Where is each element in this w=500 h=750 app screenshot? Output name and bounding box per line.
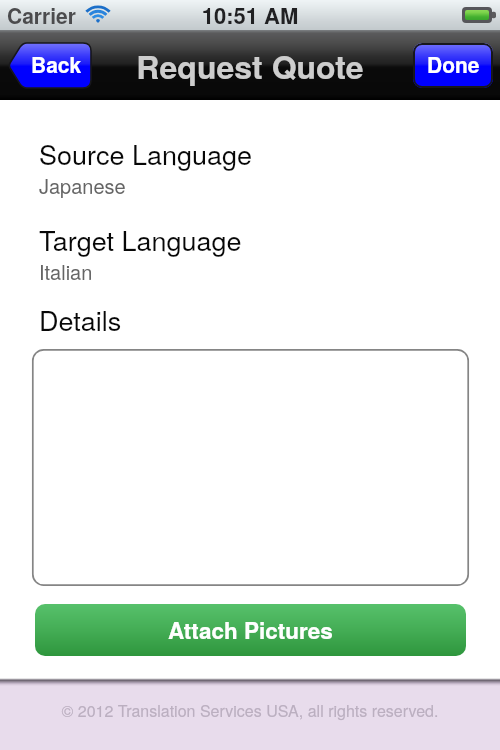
staticText: © 2012 Translation Services USA, all rig… — [0, 699, 500, 722]
staticText: Back — [31, 49, 82, 79]
staticText: Japanese — [39, 171, 126, 200]
staticText: Details — [39, 300, 122, 339]
staticText: Request Quote — [0, 43, 500, 89]
staticText: Attach Pictures — [168, 614, 333, 646]
other: Wi-Fi signal — [85, 6, 111, 23]
other: Battery full — [462, 7, 496, 23]
button[interactable]: Details input — [32, 349, 469, 586]
staticText: Done — [427, 49, 480, 79]
staticText: Target Language — [39, 220, 242, 259]
button[interactable]: Done — [413, 43, 493, 88]
staticText: Italian — [39, 257, 93, 286]
button[interactable]: Attach Pictures — [35, 604, 466, 656]
button[interactable]: Back — [8, 43, 91, 88]
staticText: Carrier — [7, 0, 76, 30]
staticText: Source Language — [39, 134, 253, 173]
staticText: 10:51 AM — [0, 0, 500, 29]
